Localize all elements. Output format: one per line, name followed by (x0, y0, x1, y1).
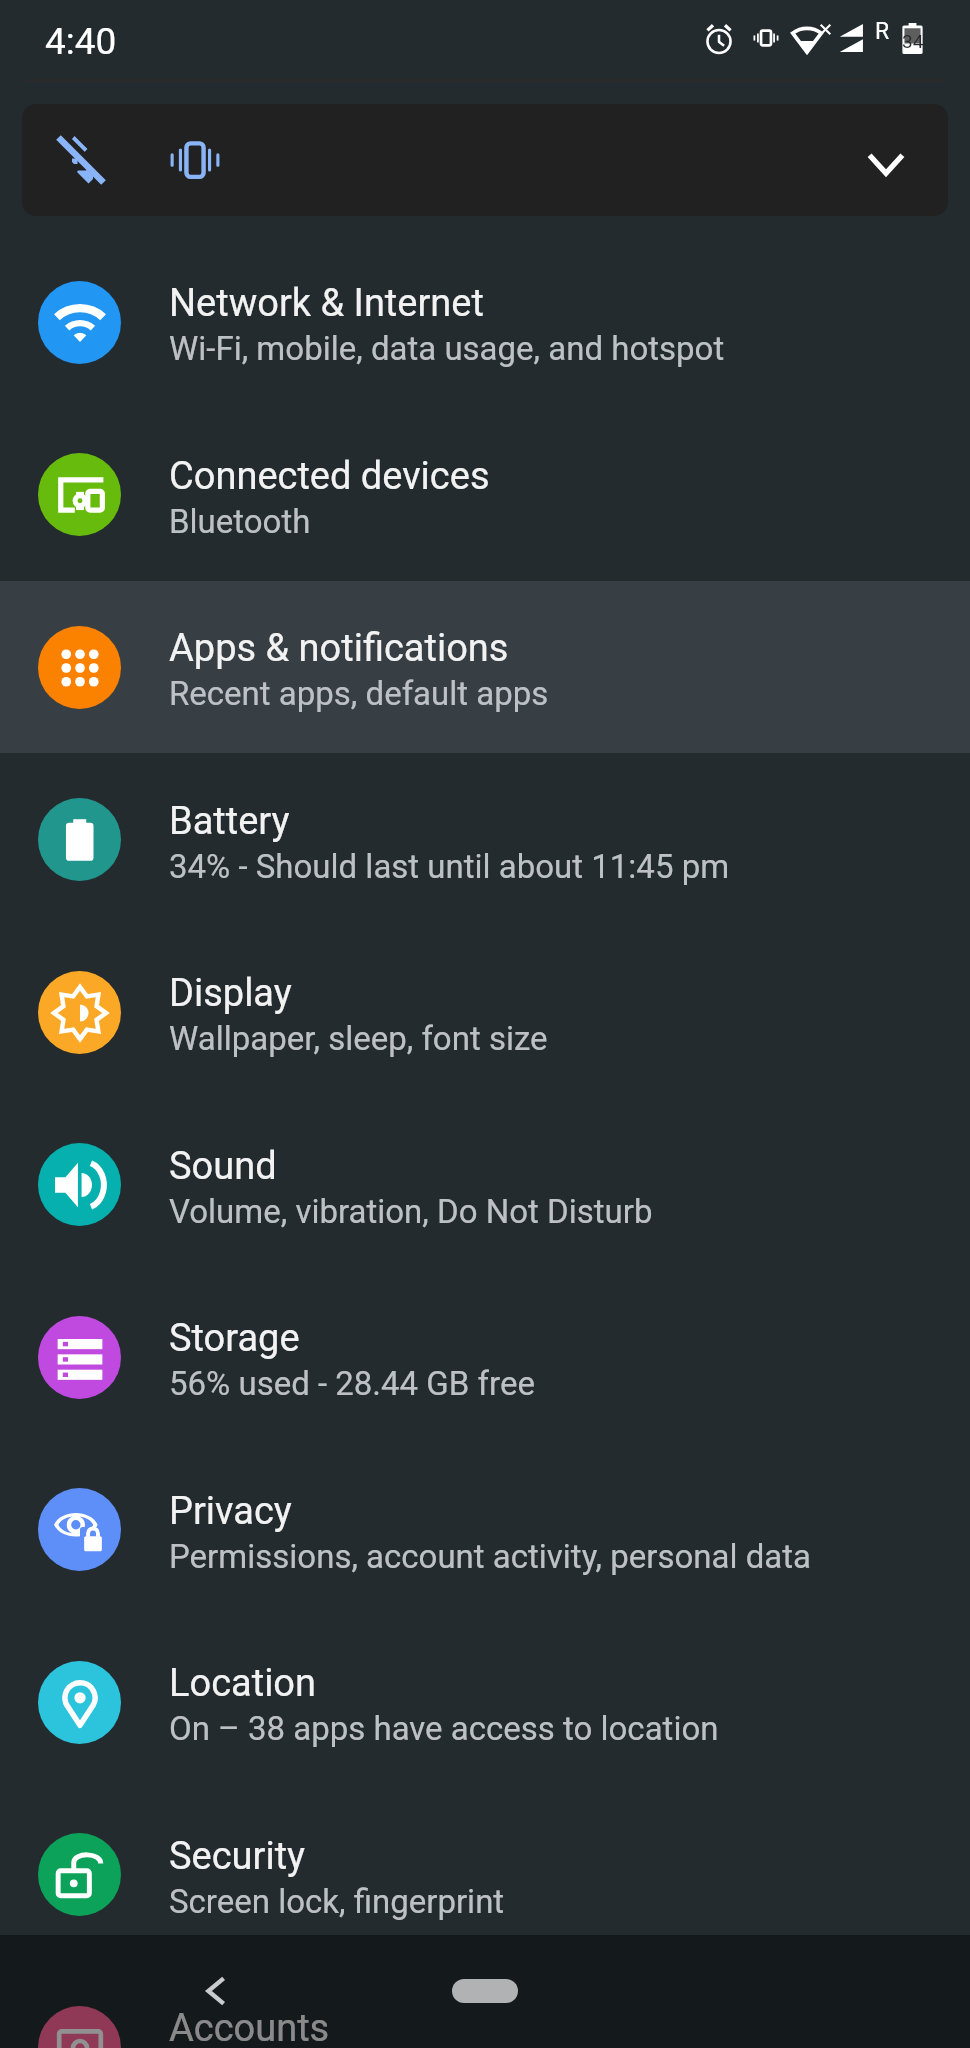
other: Expand (866, 146, 906, 186)
staticText: Storage (169, 1316, 300, 1361)
staticText: Accounts (169, 2006, 330, 2048)
staticText: Location (169, 1661, 317, 1706)
staticText: Network & Internet (169, 281, 484, 326)
button[interactable]: Battery (0, 753, 970, 926)
button[interactable]: Flash off (22, 104, 948, 216)
staticText: Bluetooth (169, 502, 311, 541)
staticText: 34% - Should last until about 11:45 pm (169, 847, 730, 886)
other: Vibrate (169, 134, 221, 186)
other: Flash off (55, 134, 107, 186)
staticText: Security (169, 1834, 306, 1879)
staticText: R (875, 18, 890, 45)
button[interactable]: Storage (0, 1271, 970, 1443)
button[interactable]: Display (0, 926, 970, 1098)
button[interactable]: Privacy (0, 1443, 970, 1616)
staticText: Volume, vibration, Do Not Disturb (169, 1192, 653, 1231)
staticText: 4:40 (45, 20, 117, 63)
staticText: Apps & notifications (169, 626, 509, 671)
staticText: Wallpaper, sleep, font size (169, 1019, 548, 1058)
button[interactable]: Network & Internet (0, 236, 970, 408)
staticText: Privacy (169, 1489, 292, 1534)
button[interactable]: Apps & notifications (0, 581, 970, 753)
button[interactable]: Security (0, 1788, 970, 1961)
staticText: Display (169, 971, 292, 1016)
button[interactable]: Home (452, 1979, 518, 2003)
staticText: Wi-Fi, mobile, data usage, and hotspot (169, 329, 725, 368)
staticText: Battery (169, 799, 290, 844)
staticText: 56% used - 28.44 GB free (169, 1364, 535, 1403)
staticText: 34 (902, 30, 924, 52)
staticText: Recent apps, default apps (169, 674, 549, 713)
staticText: Screen lock, fingerprint (169, 1882, 505, 1921)
button[interactable]: Back (206, 1976, 226, 2006)
button[interactable]: Location (0, 1616, 970, 1788)
button[interactable]: Accounts (0, 1961, 970, 2048)
staticText: Permissions, account activity, personal … (169, 1537, 811, 1576)
staticText: Sound (169, 1144, 277, 1189)
staticText: On – 38 apps have access to location (169, 1709, 719, 1748)
button[interactable]: Connected devices (0, 408, 970, 581)
button[interactable]: Sound (0, 1098, 970, 1271)
staticText: Connected devices (169, 454, 490, 499)
